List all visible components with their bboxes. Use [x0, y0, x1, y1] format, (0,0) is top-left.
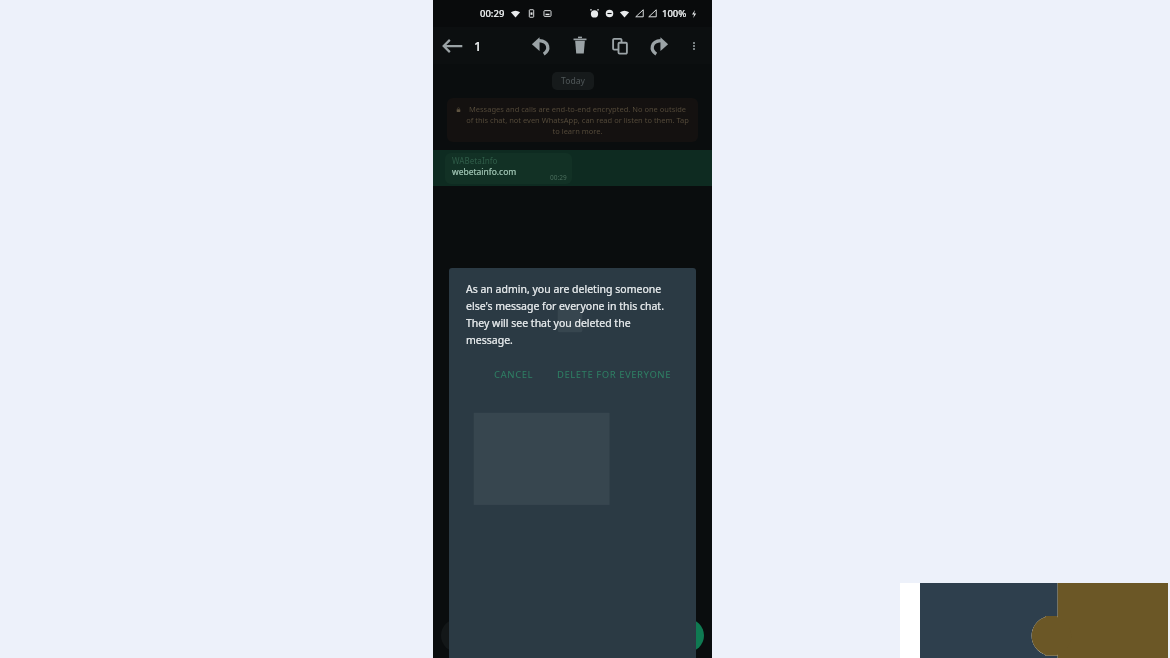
button[interactable]: Voice message — [671, 619, 704, 652]
staticText: Today — [561, 75, 585, 87]
button[interactable]: Reply — [525, 31, 555, 61]
staticText: WABetaInfo — [452, 155, 498, 166]
button[interactable]: DELETE FOR EVERYONE — [550, 363, 679, 386]
staticText: 00:29 — [550, 173, 567, 182]
button[interactable]: More options — [681, 33, 707, 59]
staticText: 100% — [662, 7, 687, 20]
button[interactable]: Delete — [565, 31, 595, 61]
button[interactable]: Copy — [605, 31, 635, 61]
staticText: 1 — [474, 37, 482, 55]
staticText: webetainfo.com — [452, 166, 517, 178]
staticText: DELETE FOR EVERYONE — [557, 368, 672, 381]
staticText: As an admin, you are deleting someone el… — [466, 282, 679, 347]
button[interactable]: WABetaInfo — [433, 150, 712, 186]
staticText: CANCEL — [494, 368, 534, 381]
button[interactable]: Back — [438, 31, 468, 61]
button[interactable]: Forward — [645, 31, 675, 61]
staticText: 00:29 — [480, 7, 505, 20]
button[interactable]: Message — [441, 619, 664, 652]
button[interactable]: Messages and calls are end-to-end encryp… — [447, 98, 698, 142]
button[interactable]: CANCEL — [487, 363, 541, 386]
staticText: Messages and calls are end-to-end encryp… — [465, 104, 690, 136]
